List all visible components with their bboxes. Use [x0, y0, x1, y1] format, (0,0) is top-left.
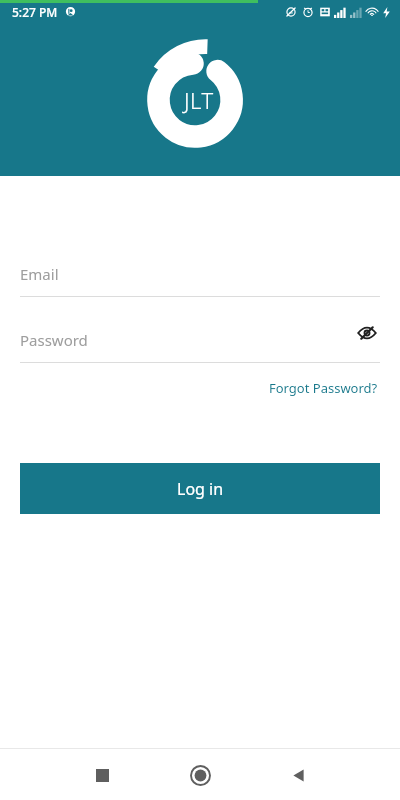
staticText: Password: [20, 330, 88, 350]
button[interactable]: Email: [0, 262, 400, 297]
staticText: JLT: [184, 85, 214, 115]
staticText: Email: [20, 264, 59, 284]
button[interactable]: Forgot Password?: [267, 375, 380, 401]
button[interactable]: Password: [0, 328, 400, 363]
staticText: 5:27 PM: [12, 4, 58, 20]
button[interactable]: Home: [180, 755, 220, 795]
button[interactable]: Log in: [20, 463, 380, 514]
staticText: Log in: [177, 478, 224, 500]
button[interactable]: Recent apps: [82, 755, 122, 795]
button[interactable]: Show password: [354, 321, 380, 345]
button[interactable]: Back: [278, 755, 318, 795]
staticText: Forgot Password?: [269, 379, 378, 397]
